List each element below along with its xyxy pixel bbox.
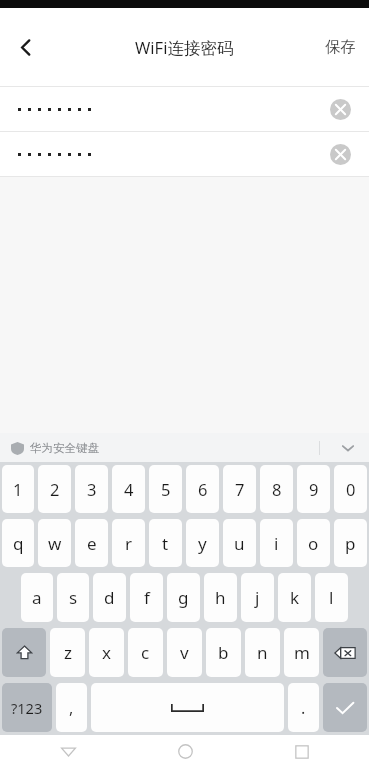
button[interactable]: Backspace bbox=[323, 628, 367, 677]
button[interactable]: d bbox=[93, 573, 126, 622]
button[interactable]: m bbox=[284, 628, 319, 677]
button[interactable]: n bbox=[245, 628, 280, 677]
staticText: f bbox=[144, 586, 150, 609]
button[interactable]: s bbox=[57, 573, 89, 622]
staticText: 保存 bbox=[325, 37, 356, 57]
staticText: w bbox=[48, 532, 62, 555]
staticText: WiFi连接密码 bbox=[135, 36, 234, 59]
button[interactable]: Enter bbox=[323, 683, 367, 732]
button[interactable]: x bbox=[89, 628, 124, 677]
button[interactable]: u bbox=[223, 519, 256, 567]
button[interactable]: . bbox=[288, 683, 319, 732]
staticText: 8 bbox=[272, 478, 282, 500]
button[interactable]: h bbox=[204, 573, 237, 622]
button[interactable]: Back bbox=[2, 24, 48, 70]
staticText: p bbox=[345, 532, 356, 555]
staticText: k bbox=[290, 586, 300, 609]
button[interactable]: , bbox=[56, 683, 87, 732]
staticText: 5 bbox=[161, 478, 171, 500]
button[interactable]: 9 bbox=[297, 465, 330, 513]
staticText: . bbox=[301, 697, 306, 719]
staticText: h bbox=[215, 586, 226, 609]
staticText: , bbox=[69, 697, 74, 719]
button[interactable]: Clear bbox=[323, 92, 357, 126]
button[interactable]: f bbox=[130, 573, 163, 622]
button[interactable]: z bbox=[50, 628, 85, 677]
staticText: 1 bbox=[13, 478, 23, 500]
button[interactable]: j bbox=[241, 573, 274, 622]
button[interactable]: r bbox=[112, 519, 145, 567]
staticText: a bbox=[32, 586, 42, 609]
staticText: j bbox=[255, 586, 260, 609]
button[interactable]: Home bbox=[163, 735, 207, 768]
staticText: d bbox=[104, 586, 115, 609]
button[interactable]: Clear bbox=[0, 132, 369, 176]
staticText: 4 bbox=[124, 478, 134, 500]
button[interactable]: e bbox=[75, 519, 108, 567]
staticText: g bbox=[178, 586, 189, 609]
staticText: o bbox=[308, 532, 319, 555]
button[interactable]: Hide keyboard bbox=[327, 433, 369, 462]
staticText: n bbox=[257, 641, 268, 664]
button[interactable]: 2 bbox=[38, 465, 71, 513]
button[interactable]: 保存 bbox=[312, 25, 369, 69]
button[interactable]: t bbox=[149, 519, 182, 567]
button[interactable]: 1 bbox=[2, 465, 34, 513]
button[interactable]: w bbox=[38, 519, 71, 567]
button[interactable]: 0 bbox=[334, 465, 367, 513]
staticText: 7 bbox=[235, 478, 245, 500]
staticText: m bbox=[294, 641, 310, 664]
button[interactable]: Space bbox=[91, 683, 284, 732]
staticText: b bbox=[218, 641, 229, 664]
button[interactable]: y bbox=[186, 519, 219, 567]
button[interactable]: k bbox=[278, 573, 311, 622]
button[interactable]: ?123 bbox=[2, 683, 52, 732]
button[interactable]: b bbox=[206, 628, 241, 677]
staticText: z bbox=[64, 641, 72, 664]
staticText: 2 bbox=[50, 478, 60, 500]
button[interactable]: a bbox=[21, 573, 53, 622]
staticText: 3 bbox=[87, 478, 97, 500]
staticText: 6 bbox=[198, 478, 208, 500]
staticText: 华为安全键盘 bbox=[30, 441, 99, 455]
staticText: r bbox=[125, 532, 133, 555]
button[interactable]: 6 bbox=[186, 465, 219, 513]
staticText: s bbox=[69, 586, 78, 609]
button[interactable]: g bbox=[167, 573, 200, 622]
staticText: v bbox=[180, 641, 189, 664]
button[interactable]: v bbox=[167, 628, 202, 677]
button[interactable]: c bbox=[128, 628, 163, 677]
staticText: 0 bbox=[346, 478, 356, 500]
button[interactable]: 4 bbox=[112, 465, 145, 513]
button[interactable]: o bbox=[297, 519, 330, 567]
button[interactable]: Shift bbox=[2, 628, 46, 677]
button[interactable]: Clear bbox=[0, 87, 369, 131]
staticText: t bbox=[162, 532, 169, 555]
staticText: 9 bbox=[309, 478, 319, 500]
staticText: u bbox=[234, 532, 245, 555]
button[interactable]: Clear bbox=[323, 137, 357, 171]
staticText: c bbox=[141, 641, 150, 664]
staticText: q bbox=[13, 532, 24, 555]
staticText: l bbox=[329, 586, 334, 609]
button[interactable]: 8 bbox=[260, 465, 293, 513]
staticText: e bbox=[87, 532, 97, 555]
staticText: x bbox=[102, 641, 111, 664]
staticText: y bbox=[198, 532, 207, 555]
button[interactable]: Back bbox=[46, 735, 90, 768]
button[interactable]: q bbox=[2, 519, 34, 567]
staticText: ?123 bbox=[11, 698, 43, 718]
button[interactable]: 7 bbox=[223, 465, 256, 513]
staticText: i bbox=[274, 532, 279, 555]
button[interactable]: l bbox=[315, 573, 348, 622]
button[interactable]: 3 bbox=[75, 465, 108, 513]
button[interactable]: p bbox=[334, 519, 367, 567]
button[interactable]: 5 bbox=[149, 465, 182, 513]
button[interactable]: i bbox=[260, 519, 293, 567]
button[interactable]: Recents bbox=[280, 735, 324, 768]
